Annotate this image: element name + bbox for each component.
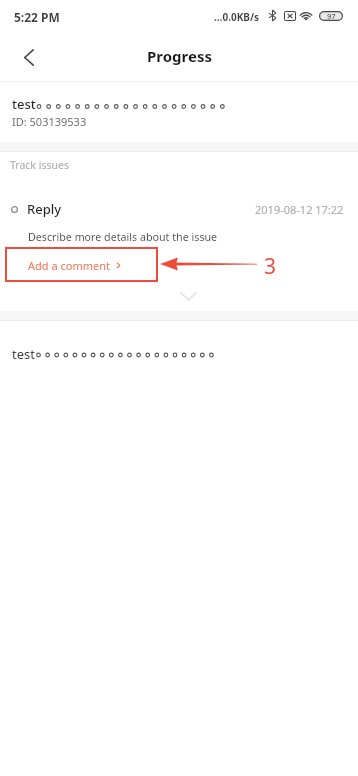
- button[interactable]: Add a comment: [28, 258, 122, 273]
- staticText: 97: [327, 11, 336, 21]
- button[interactable]: Back: [12, 40, 46, 74]
- staticText: ...0.0KB/s: [214, 10, 260, 24]
- staticText: Reply: [27, 200, 62, 218]
- staticText: Add a comment: [28, 258, 110, 273]
- staticText: Track issues: [10, 158, 69, 172]
- staticText: test: [12, 345, 35, 363]
- staticText: Progress: [147, 46, 212, 66]
- staticText: 2019-08-12 17:22: [255, 202, 344, 217]
- staticText: test: [12, 95, 36, 113]
- button[interactable]: Expand: [181, 293, 196, 300]
- staticText: 5:22 PM: [14, 9, 60, 25]
- staticText: ID: 503139533: [12, 114, 87, 129]
- staticText: 3: [264, 252, 277, 281]
- staticText: Describe more details about the issue: [28, 230, 218, 245]
